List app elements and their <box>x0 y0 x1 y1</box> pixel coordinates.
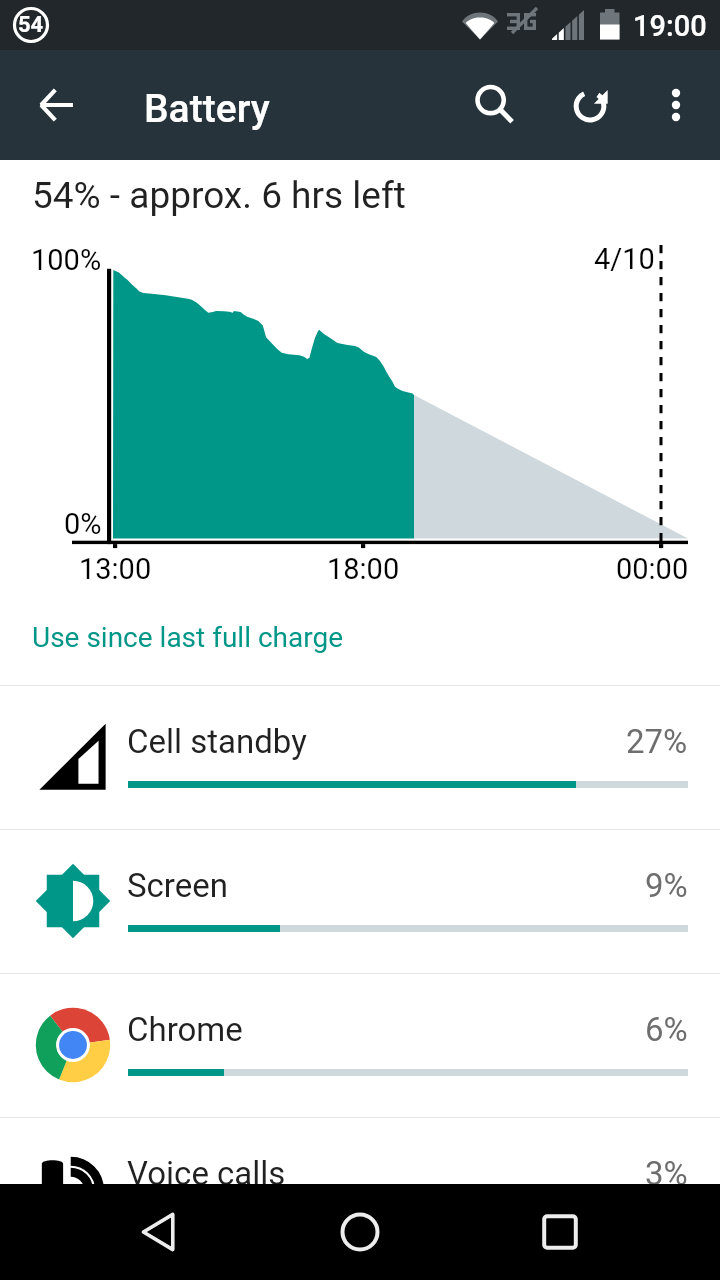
staticText: 54 <box>18 12 44 38</box>
staticText: 100% <box>31 243 102 277</box>
button[interactable]: More options <box>628 50 720 160</box>
staticText: 54% - approx. 6 hrs left <box>32 174 406 217</box>
staticText: 27% <box>626 722 688 761</box>
staticText: 00:00 <box>616 552 689 586</box>
staticText: 6% <box>645 1010 688 1049</box>
button[interactable]: Recent apps <box>500 1184 620 1280</box>
staticText: Cell standby <box>127 722 307 761</box>
button[interactable]: Home <box>300 1184 420 1280</box>
staticText: Battery <box>144 86 270 132</box>
button[interactable]: Search <box>447 50 543 160</box>
staticText: 0% <box>64 507 102 541</box>
button[interactable]: Voice calls <box>0 1117 720 1261</box>
staticText: 4/10 <box>594 242 655 276</box>
staticText: Use since last full charge <box>32 621 344 654</box>
button[interactable]: Chrome <box>0 973 720 1117</box>
button[interactable]: Screen <box>0 829 720 973</box>
button[interactable]: Back <box>100 1184 220 1280</box>
staticText: 19:00 <box>633 9 707 43</box>
staticText: Screen <box>127 866 228 905</box>
staticText: 9% <box>645 866 688 905</box>
staticText: Chrome <box>127 1010 243 1049</box>
staticText: 3% <box>645 1154 688 1193</box>
staticText: 18:00 <box>327 552 400 586</box>
staticText: Voice calls <box>127 1154 286 1193</box>
button[interactable]: Refresh <box>542 50 638 160</box>
button[interactable]: Use since last full charge <box>0 600 720 672</box>
staticText: 13:00 <box>79 552 152 586</box>
button[interactable]: Navigate up <box>8 50 104 160</box>
button[interactable]: Cell standby <box>0 685 720 829</box>
